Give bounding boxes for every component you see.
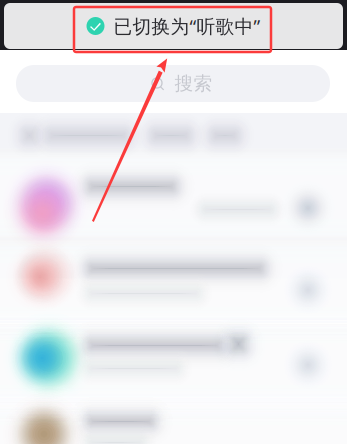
button[interactable]: 搜索	[16, 65, 330, 102]
button[interactable]: 已切换为“听歌中”	[4, 3, 343, 49]
staticText: 已切换为“听歌中”	[113, 14, 260, 38]
staticText: 搜索	[174, 72, 212, 95]
